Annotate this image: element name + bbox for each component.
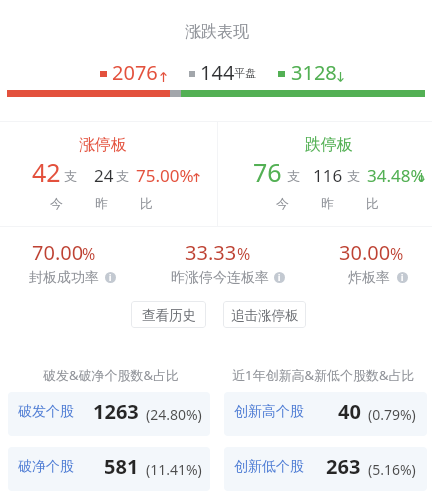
staticText: 34.48% [367, 164, 425, 187]
staticText: 24 [94, 164, 114, 187]
staticText: 30.00 [339, 239, 391, 266]
staticText: 破发&破净个股数&占比 [43, 366, 180, 384]
staticText: i [278, 272, 281, 283]
staticText: 33.33 [185, 239, 237, 266]
staticText: 昨 [321, 195, 334, 211]
staticText: 581 [104, 453, 139, 480]
staticText: 116 [313, 164, 343, 187]
button[interactable] [0, 122, 217, 226]
staticText: 263 [326, 453, 361, 480]
button[interactable] [8, 392, 210, 436]
staticText: 涨停板 [79, 135, 127, 155]
staticText: % [237, 243, 251, 265]
staticText: 近1年创新高&新低个股数&占比 [232, 366, 415, 384]
button[interactable]: More info [274, 272, 285, 283]
staticText: 昨 [95, 195, 108, 211]
button[interactable] [342, 242, 407, 286]
staticText: 昨涨停今连板率 [171, 269, 269, 287]
button[interactable]: More info [397, 272, 408, 283]
button[interactable] [131, 301, 206, 328]
staticText: % [390, 243, 404, 265]
staticText: 封板成功率 [29, 269, 99, 287]
staticText: 追击涨停板 [231, 307, 299, 324]
staticText: i [109, 272, 112, 283]
staticText: 平盘 [234, 66, 256, 80]
staticText: (0.79%) [368, 405, 416, 424]
staticText: 创新低个股 [234, 458, 304, 476]
staticText: 支 [347, 168, 360, 184]
staticText: 今 [276, 195, 289, 211]
button[interactable] [165, 242, 285, 286]
staticText: 144 [200, 59, 235, 86]
staticText: 破发个股 [18, 403, 74, 421]
staticText: 支 [116, 168, 129, 184]
button[interactable] [8, 447, 210, 491]
staticText: 2076 [112, 59, 158, 86]
staticText: 1263 [93, 398, 139, 425]
staticText: 涨跌表现 [185, 22, 249, 42]
button[interactable] [224, 447, 427, 491]
staticText: 炸板率 [348, 269, 390, 287]
staticText: (24.80%) [146, 405, 202, 424]
staticText: 支 [64, 168, 77, 184]
staticText: 今 [50, 195, 63, 211]
button[interactable] [223, 301, 306, 328]
staticText: 42 [32, 155, 61, 189]
staticText: 76 [253, 155, 282, 189]
staticText: % [82, 243, 96, 265]
staticText: (5.16%) [368, 460, 416, 479]
staticText: 支 [287, 168, 300, 184]
staticText: 查看历史 [142, 307, 196, 324]
staticText: 3128 [291, 59, 337, 86]
staticText: 70.00 [32, 239, 84, 266]
staticText: (11.41%) [146, 460, 202, 479]
button[interactable] [23, 242, 115, 286]
staticText: 40 [338, 398, 361, 425]
staticText: i [401, 272, 404, 283]
staticText: 比 [366, 195, 379, 211]
staticText: 75.00% [136, 164, 194, 187]
staticText: 比 [140, 195, 153, 211]
button[interactable] [218, 122, 432, 226]
button[interactable] [224, 392, 427, 436]
staticText: 破净个股 [18, 458, 74, 476]
staticText: 跌停板 [305, 135, 353, 155]
button[interactable]: More info [105, 272, 116, 283]
staticText: 创新高个股 [234, 403, 304, 421]
